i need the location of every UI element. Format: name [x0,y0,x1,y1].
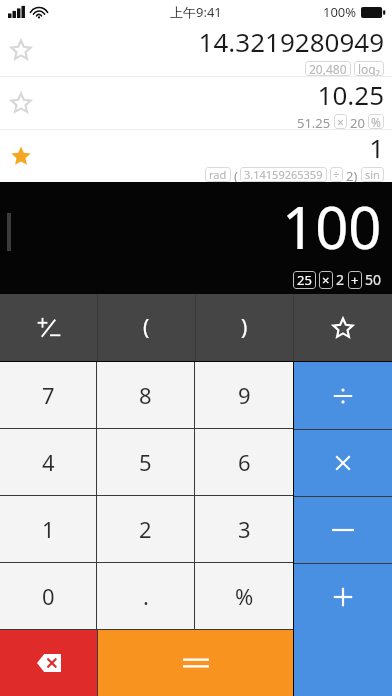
button[interactable]: ) [196,294,293,361]
staticText: 1 [369,130,384,165]
button[interactable]: 14.3219280949 [0,24,392,76]
staticText: . [143,581,149,611]
staticText: 5 [139,447,152,477]
staticText: 2) [346,167,358,182]
button[interactable]: 6 [195,429,293,495]
staticText: 51.25 [297,114,331,129]
button[interactable]: 8 [97,362,194,428]
button[interactable]: 0 [0,563,96,629]
staticText: rad [209,167,227,182]
button[interactable]: Divide [294,362,392,429]
staticText: sin [365,167,380,182]
button[interactable]: 3 [195,496,293,562]
staticText: 3 [238,514,251,544]
button[interactable]: Plus [294,564,392,696]
staticText: × [337,114,344,129]
staticText: 6 [238,447,251,477]
staticText: 25 [297,271,312,289]
button[interactable]: 2 [97,496,194,562]
button[interactable]: Minus [294,497,392,563]
button[interactable]: 10.25 [0,77,392,129]
staticText: 8 [139,380,152,410]
staticText: 2 [336,270,345,289]
staticText: 50 [365,270,382,289]
staticText: 4 [42,447,55,477]
staticText: ( [234,167,238,182]
staticText: % [371,114,381,129]
staticText: % [235,581,254,611]
staticText: 上午9:41 [170,3,222,21]
button[interactable]: ( [98,294,195,361]
staticText: 20,480 [309,61,347,76]
button[interactable]: Equals [98,630,293,696]
staticText: × [322,271,330,289]
button[interactable]: 7 [0,362,96,428]
button[interactable]: 1 [0,130,392,182]
staticText: 9 [238,380,251,410]
button[interactable]: Delete [0,630,97,696]
button[interactable]: Multiply [294,430,392,496]
staticText: 10.25 [317,77,384,112]
button[interactable]: 5 [97,429,194,495]
button[interactable]: 4 [0,429,96,495]
staticText: ) [241,313,248,342]
staticText: ÷ [333,167,340,182]
staticText: 20 [350,114,365,129]
staticText: 2 [139,514,152,544]
button[interactable]: 9 [195,362,293,428]
staticText: + [351,271,359,289]
button[interactable]: . [97,563,194,629]
staticText: 3.14159265359 [244,167,323,182]
staticText: ( [143,313,150,342]
staticText: 7 [42,380,55,410]
staticText: log₂ [358,61,380,76]
staticText: 0 [42,581,55,611]
staticText: 100 [282,187,382,266]
staticText: 1 [42,514,55,544]
button[interactable]: Favorite [294,294,392,361]
button[interactable]: % [195,563,293,629]
staticText: 100% [323,3,357,21]
button[interactable]: Plus minus sign [0,294,97,361]
staticText: 14.3219280949 [198,24,384,59]
button[interactable]: 1 [0,496,96,562]
